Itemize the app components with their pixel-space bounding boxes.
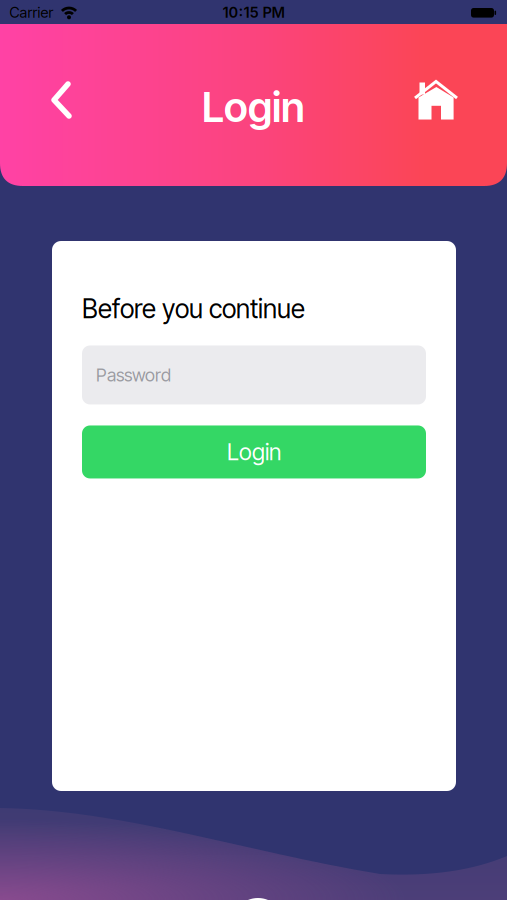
staticText: Password xyxy=(96,364,171,386)
staticText: Before you continue xyxy=(82,293,305,324)
button[interactable]: Password xyxy=(82,345,426,404)
staticText: Login xyxy=(227,438,281,466)
staticText: Login xyxy=(202,82,305,132)
staticText: Carrier xyxy=(9,4,53,21)
staticText: 10:15 PM xyxy=(222,4,285,21)
button[interactable]: Login xyxy=(82,425,426,478)
button[interactable]: Home xyxy=(413,77,459,123)
button[interactable]: Back xyxy=(39,78,83,122)
